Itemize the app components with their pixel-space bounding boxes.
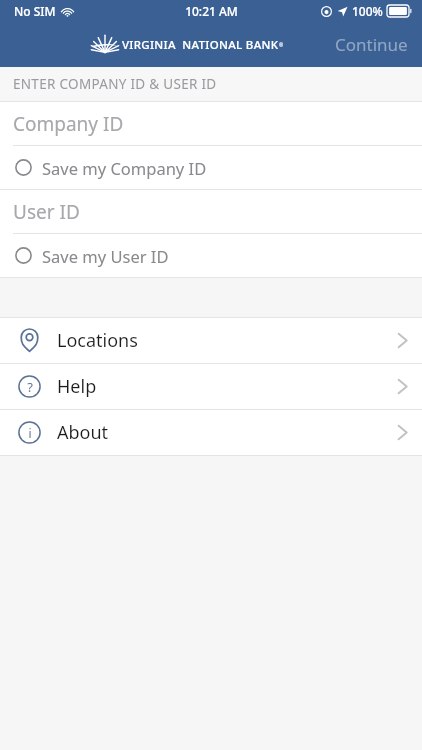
staticText: i: [28, 425, 32, 441]
staticText: ENTER COMPANY ID & USER ID: [13, 75, 217, 93]
staticText: ?: [27, 378, 33, 396]
staticText: About: [57, 420, 109, 445]
button[interactable]: Company ID: [0, 102, 422, 145]
staticText: Company ID: [13, 111, 124, 137]
button[interactable]: Save my User ID: [0, 234, 422, 277]
staticText: Continue: [335, 33, 408, 56]
staticText: 100%: [352, 3, 383, 19]
button[interactable]: Continue: [321, 25, 422, 64]
button[interactable]: Locations: [0, 318, 422, 363]
button[interactable]: i: [0, 410, 422, 455]
staticText: 10:21 AM: [185, 3, 238, 19]
staticText: Help: [57, 374, 97, 399]
button[interactable]: User ID: [0, 190, 422, 233]
staticText: Locations: [57, 328, 138, 353]
button[interactable]: Save my Company ID: [0, 146, 422, 189]
staticText: ®: [279, 42, 284, 49]
staticText: Save my User ID: [42, 245, 169, 267]
button[interactable]: ?: [0, 364, 422, 409]
staticText: VIRGINIA NATIONAL BANK: [122, 37, 279, 53]
staticText: Save my Company ID: [42, 157, 207, 179]
staticText: No SIM: [14, 3, 56, 19]
staticText: User ID: [13, 199, 80, 225]
